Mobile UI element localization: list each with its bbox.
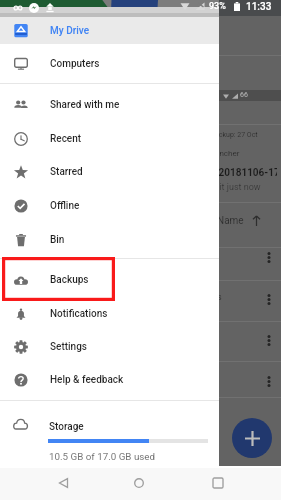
staticText: ackup: 27 Oct [215,131,258,139]
staticText: Notifications [50,308,108,320]
button[interactable]: My Drive [0,17,219,44]
button[interactable]: More options [260,373,277,390]
staticText: Name [217,215,244,227]
button[interactable]: Back [49,469,77,497]
staticText: Shared with me [50,99,120,111]
staticText: 10.5 GB of 17.0 GB used [49,451,156,462]
button[interactable]: Backups [0,262,219,297]
button[interactable]: Settings [0,331,219,363]
button[interactable]: More options [260,291,277,308]
staticText: Help & feedback [50,374,124,386]
staticText: _20181106-174 [214,167,277,179]
staticText: uncher [215,149,240,158]
staticText: l it just now [215,182,261,193]
staticText: 11:33 [246,1,272,13]
button[interactable]: Help & feedback [0,363,219,396]
button[interactable]: Create new [232,418,272,458]
staticText: Computers [50,58,100,70]
button[interactable]: Bin [0,222,219,257]
staticText: Recent [50,133,82,145]
staticText: Bin [50,234,65,246]
staticText: Settings [50,341,88,353]
staticText: Backups [50,274,89,286]
staticText: Storage [49,421,84,433]
staticText: My Drive [50,25,89,37]
button[interactable]: Home [125,469,153,497]
staticText: Offline [50,200,80,212]
button[interactable]: Notifications [0,297,219,331]
button[interactable]: Computers [0,44,219,83]
button[interactable]: Name [217,210,267,232]
button[interactable]: More options [260,249,277,266]
button[interactable]: Shared with me [0,87,219,122]
staticText: 93% [209,1,226,12]
staticText: 66 [240,91,248,99]
button[interactable]: Recent [0,122,219,155]
button[interactable]: Recent apps [204,469,232,497]
staticText: Starred [50,166,83,178]
staticText: s [217,292,222,303]
button[interactable]: Storage [0,401,219,466]
button[interactable]: More options [260,332,277,349]
button[interactable]: Offline [0,189,219,223]
button[interactable]: Starred [0,155,219,189]
